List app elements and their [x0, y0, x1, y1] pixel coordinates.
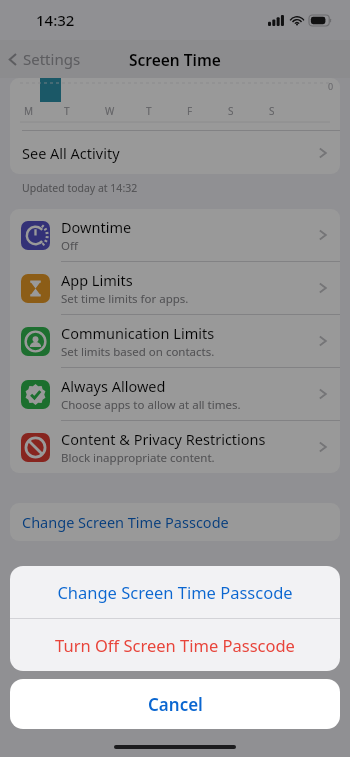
other: Home indicator: [114, 745, 236, 749]
staticText: S: [269, 104, 275, 118]
staticText: Communication Limits: [61, 323, 215, 343]
staticText: Off: [61, 238, 78, 254]
staticText: T: [64, 104, 70, 118]
staticText: F: [187, 104, 193, 118]
button[interactable]: Settings: [0, 45, 89, 73]
staticText: Change Screen Time Passcode: [57, 581, 293, 603]
button[interactable]: Content & Privacy Restrictions: [10, 421, 340, 473]
staticText: See All Activity: [22, 143, 318, 163]
staticText: Content & Privacy Restrictions: [61, 429, 266, 449]
staticText: Change Screen Time Passcode: [22, 512, 229, 532]
staticText: S: [228, 104, 234, 118]
staticText: Set limits based on contacts.: [61, 344, 215, 360]
button[interactable]: Communication Limits: [10, 315, 340, 367]
button[interactable]: Change Screen Time Passcode: [10, 503, 340, 541]
button[interactable]: Change Screen Time Passcode: [10, 566, 340, 618]
button[interactable]: App Limits: [10, 262, 340, 314]
staticText: App Limits: [61, 270, 133, 290]
staticText: Updated today at 14:32: [22, 181, 138, 195]
button[interactable]: Downtime: [10, 209, 340, 261]
staticText: W: [105, 104, 115, 118]
staticText: Choose apps to allow at all times.: [61, 397, 241, 413]
staticText: 14:32: [36, 10, 75, 30]
staticText: Turn Off Screen Time Passcode: [55, 634, 295, 656]
button[interactable]: Always Allowed: [10, 368, 340, 420]
staticText: 0: [328, 80, 334, 92]
staticText: T: [146, 104, 152, 118]
staticText: Block inappropriate content.: [61, 450, 215, 466]
button[interactable]: Cancel: [10, 679, 340, 729]
button[interactable]: See All Activity: [10, 131, 340, 174]
staticText: Screen Time: [129, 49, 221, 70]
staticText: Set time limits for apps.: [61, 291, 189, 307]
staticText: Cancel: [148, 693, 203, 716]
staticText: Settings: [23, 49, 81, 69]
button[interactable]: Turn Off Screen Time Passcode: [10, 619, 340, 671]
staticText: Always Allowed: [61, 376, 166, 396]
staticText: M: [24, 104, 34, 118]
staticText: Downtime: [61, 217, 132, 237]
